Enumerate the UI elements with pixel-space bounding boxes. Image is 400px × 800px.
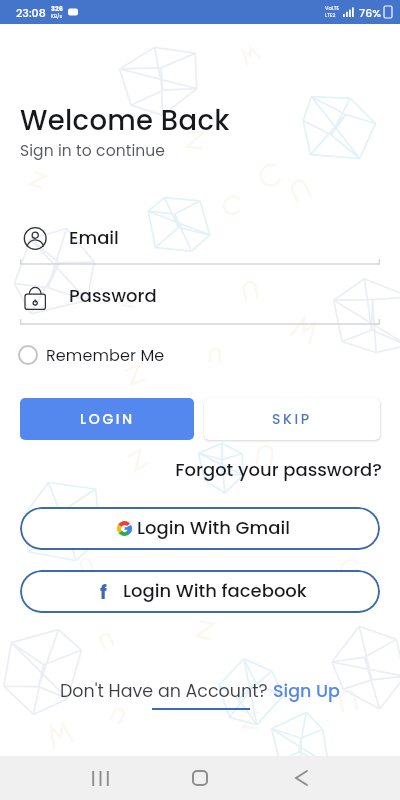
button[interactable]: Home — [168, 756, 232, 800]
staticText: Login With facebook — [123, 578, 307, 603]
staticText: Don't Have an Account? — [60, 679, 273, 704]
staticText: Login With Gmail — [137, 515, 290, 540]
staticText: LOGIN — [80, 409, 135, 429]
staticText: Welcome Back — [20, 101, 230, 139]
staticText: Sign in to continue — [20, 140, 166, 162]
staticText: 76% — [359, 5, 381, 20]
button[interactable]: Forgot your password? — [0, 457, 382, 482]
staticText: Remember Me — [46, 344, 165, 366]
button[interactable]: f — [20, 570, 380, 613]
staticText: 23:08 — [16, 5, 46, 20]
button[interactable]: Sign Up — [273, 679, 340, 704]
staticText: Password — [69, 283, 157, 308]
staticText: Email — [69, 225, 119, 250]
button[interactable]: Remember Me — [18, 343, 165, 367]
button[interactable]: Recent apps — [68, 756, 132, 800]
staticText: 326 — [51, 4, 63, 13]
staticText: SKIP — [272, 409, 312, 429]
staticText: VoLTE — [325, 5, 340, 12]
staticText: KB/s — [51, 13, 63, 20]
staticText: LTE2 — [325, 12, 336, 19]
staticText: f — [100, 579, 107, 606]
button[interactable]: SKIP — [204, 398, 380, 440]
button[interactable]: Login With Gmail — [20, 507, 380, 550]
button[interactable]: Back — [269, 756, 333, 800]
button[interactable]: LOGIN — [20, 398, 194, 440]
